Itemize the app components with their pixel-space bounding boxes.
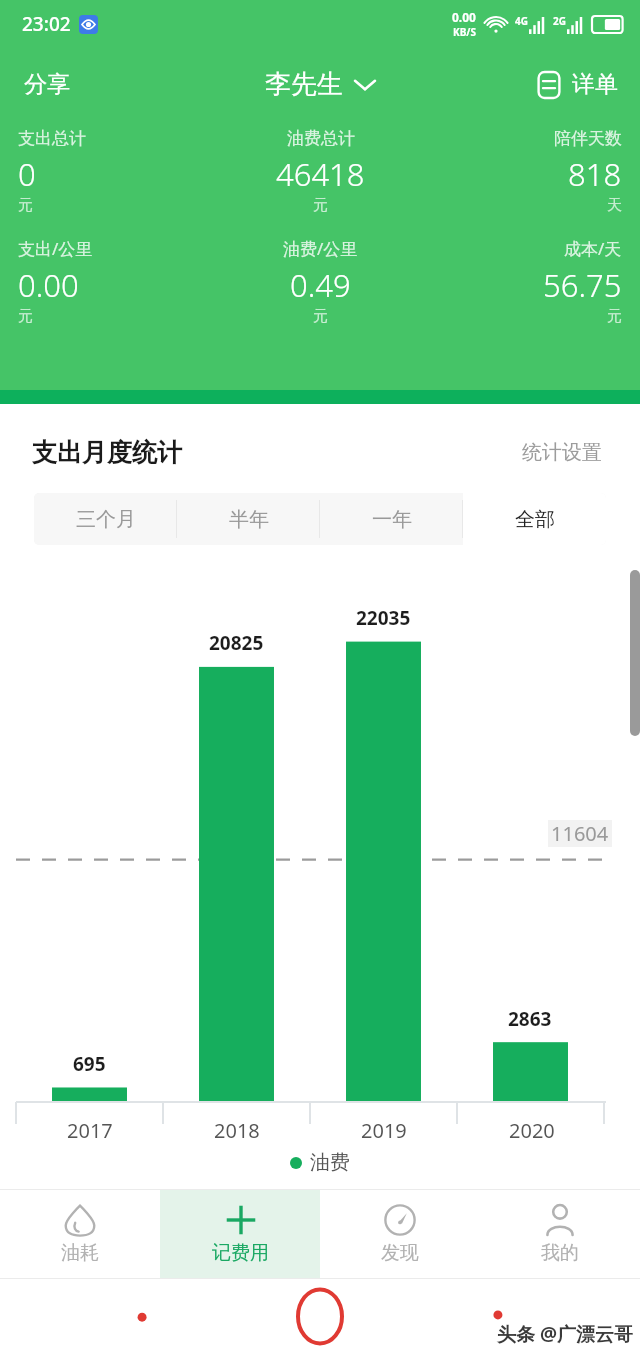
button[interactable]: 三个月	[34, 493, 177, 545]
staticText: 详单	[572, 70, 618, 99]
staticText: 我的	[541, 1241, 579, 1265]
staticText: 元	[313, 196, 328, 215]
staticText: 头条 @广漂云哥	[497, 1321, 634, 1347]
staticText: 半年	[229, 507, 269, 532]
staticText: 0	[18, 153, 36, 195]
staticText: 20825	[209, 630, 264, 656]
staticText: 2863	[508, 1006, 552, 1032]
staticText: 记费用	[212, 1241, 269, 1265]
staticText: 818	[568, 153, 622, 195]
button[interactable]: 油耗	[0, 1190, 160, 1278]
staticText: 三个月	[76, 507, 136, 532]
staticText: 全部	[515, 507, 555, 532]
staticText: 一年	[372, 507, 412, 532]
button[interactable]: 我的	[480, 1190, 640, 1278]
staticText: 0.49	[290, 264, 351, 306]
button[interactable]: 统计设置	[516, 434, 608, 471]
staticText: 支出总计	[18, 128, 86, 149]
button[interactable]: 全部	[463, 493, 606, 545]
staticText: 22035	[356, 605, 411, 631]
staticText: 发现	[381, 1241, 419, 1265]
staticText: 0.00	[452, 9, 476, 25]
staticText: 元	[18, 307, 33, 326]
staticText: 0.00	[18, 264, 79, 306]
staticText: KB/S	[453, 25, 476, 39]
button[interactable]: 李先生	[251, 60, 389, 109]
staticText: 46418	[276, 153, 365, 195]
staticText: 成本/天	[564, 237, 622, 260]
staticText: 统计设置	[522, 440, 602, 465]
staticText: 元	[18, 196, 33, 215]
staticText: 李先生	[265, 68, 343, 101]
staticText: 油费/公里	[283, 237, 358, 260]
staticText: 油费总计	[287, 128, 355, 149]
staticText: 元	[607, 307, 622, 326]
staticText: 2019	[361, 1117, 407, 1144]
button[interactable]: 分享	[0, 60, 94, 109]
button[interactable]: 一年	[320, 493, 463, 545]
staticText: 11604	[551, 820, 609, 847]
staticText: 元	[313, 307, 328, 326]
staticText: 2017	[67, 1117, 113, 1144]
staticText: 23:02	[22, 11, 71, 37]
staticText: 油耗	[61, 1241, 99, 1265]
button[interactable]: 详单	[522, 62, 640, 107]
button[interactable]: 发现	[320, 1190, 480, 1278]
button[interactable]: 半年	[177, 493, 320, 545]
staticText: 56.75	[543, 264, 622, 306]
staticText: 695	[73, 1051, 106, 1077]
staticText: 2020	[509, 1117, 555, 1144]
staticText: 4G	[515, 14, 528, 28]
staticText: 天	[607, 196, 622, 215]
staticText: 支出/公里	[18, 237, 93, 260]
staticText: 支出月度统计	[32, 437, 182, 468]
staticText: 陪伴天数	[554, 128, 622, 149]
staticText: 2018	[214, 1117, 260, 1144]
button[interactable]: 记费用	[160, 1190, 320, 1278]
staticText: 油费	[310, 1150, 350, 1175]
staticText: 2G	[553, 14, 566, 28]
staticText: 分享	[24, 70, 70, 99]
